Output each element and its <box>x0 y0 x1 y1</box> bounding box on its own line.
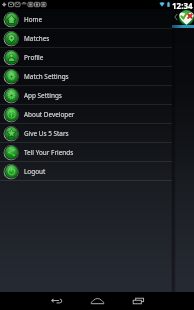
button[interactable]: Home <box>0 10 172 29</box>
button[interactable]: Home <box>77 292 117 310</box>
button[interactable]: Matches <box>0 29 172 48</box>
button[interactable]: App Settings <box>0 86 172 105</box>
staticText: Give Us 5 Stars <box>24 129 69 138</box>
staticText: Home <box>24 15 43 24</box>
staticText: Logout <box>24 167 46 176</box>
button[interactable]: Give Us 5 Stars <box>0 124 172 143</box>
staticText: Profile <box>24 53 44 62</box>
button[interactable]: Back <box>36 292 76 310</box>
button[interactable]: Logout <box>0 162 172 181</box>
button[interactable]: Match Settings <box>0 67 172 86</box>
staticText: App Settings <box>24 91 62 100</box>
staticText: 12:34 <box>172 0 193 9</box>
button[interactable]: Tell Your Friends <box>0 143 172 162</box>
staticText: Matches <box>24 34 50 43</box>
button[interactable]: Match notification <box>179 10 194 25</box>
staticText: Tell Your Friends <box>24 148 74 157</box>
staticText: About Developer <box>24 110 75 119</box>
staticText: Match Settings <box>24 72 69 81</box>
button[interactable]: About Developer <box>0 105 172 124</box>
button[interactable]: Profile <box>0 48 172 67</box>
button[interactable]: Recent apps <box>118 292 158 310</box>
